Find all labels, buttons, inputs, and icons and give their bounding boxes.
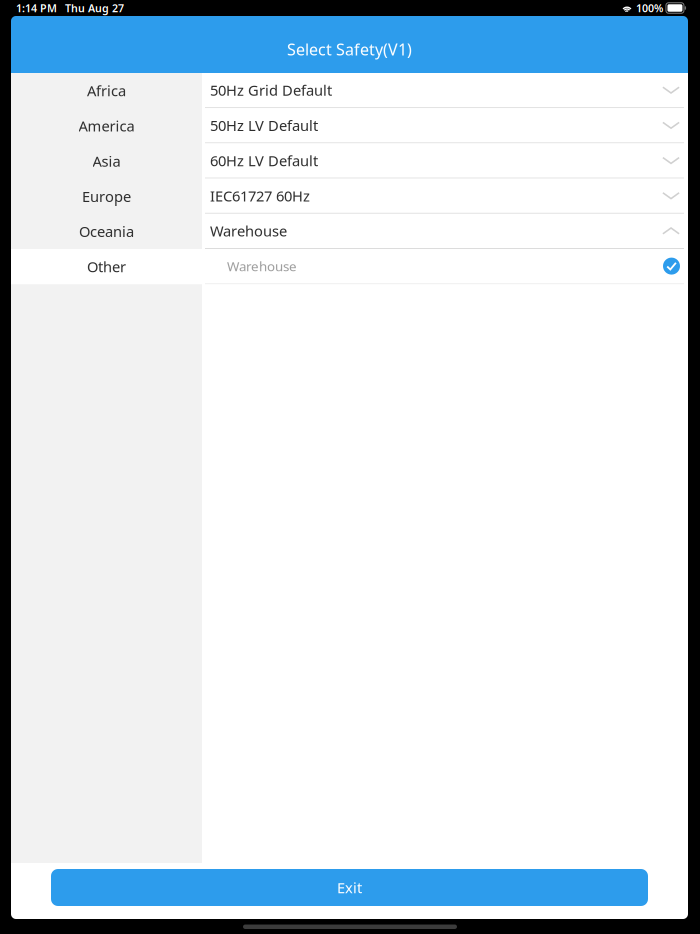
button[interactable]: Oceania [11,214,202,249]
button[interactable]: Warehouse [202,249,688,284]
staticText: Other [87,257,126,276]
staticText: America [78,116,134,136]
staticText: Oceania [79,222,134,241]
staticText: IEC61727 60Hz [210,186,310,205]
staticText: 50Hz LV Default [210,116,318,135]
staticText: 60Hz LV Default [210,151,318,170]
staticText: Africa [87,81,126,100]
button[interactable]: Europe [11,179,202,214]
staticText: Exit [337,878,362,897]
button[interactable]: Africa [11,73,202,108]
staticText: 100% [636,1,663,15]
staticText: 50Hz Grid Default [210,80,332,100]
staticText: Europe [82,186,131,206]
button[interactable]: Exit [51,869,648,906]
button[interactable]: 60Hz LV Default [202,143,688,179]
staticText: Asia [92,151,120,171]
staticText: Thu Aug 27 [65,1,124,15]
button[interactable]: America [11,108,202,143]
button[interactable]: Warehouse [202,214,688,249]
button[interactable]: Asia [11,143,202,179]
button[interactable]: IEC61727 60Hz [202,179,688,214]
button[interactable]: 50Hz Grid Default [202,73,688,108]
staticText: Warehouse [210,221,287,241]
staticText: 1:14 PM [16,1,57,15]
staticText: Select Safety(V1) [287,39,412,60]
button[interactable]: 50Hz LV Default [202,108,688,143]
staticText: Warehouse [227,257,297,275]
button[interactable]: Other [11,249,202,284]
